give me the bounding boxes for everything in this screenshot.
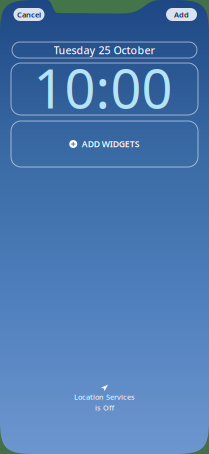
button[interactable]: ADD WIDGETS — [11, 121, 198, 167]
staticText: Location Services — [74, 392, 135, 402]
staticText: 10:00 — [33, 52, 172, 123]
staticText: is Off — [95, 403, 114, 412]
button[interactable]: 10:00 — [11, 63, 198, 115]
staticText: ADD WIDGETS — [82, 138, 140, 150]
staticText: Add — [174, 9, 189, 20]
button[interactable]: Tuesday 25 October — [12, 42, 197, 58]
button[interactable]: Add — [166, 8, 197, 21]
staticText: Cancel — [17, 9, 41, 20]
staticText: Tuesday 25 October — [53, 43, 155, 57]
button[interactable]: Cancel — [13, 8, 44, 21]
